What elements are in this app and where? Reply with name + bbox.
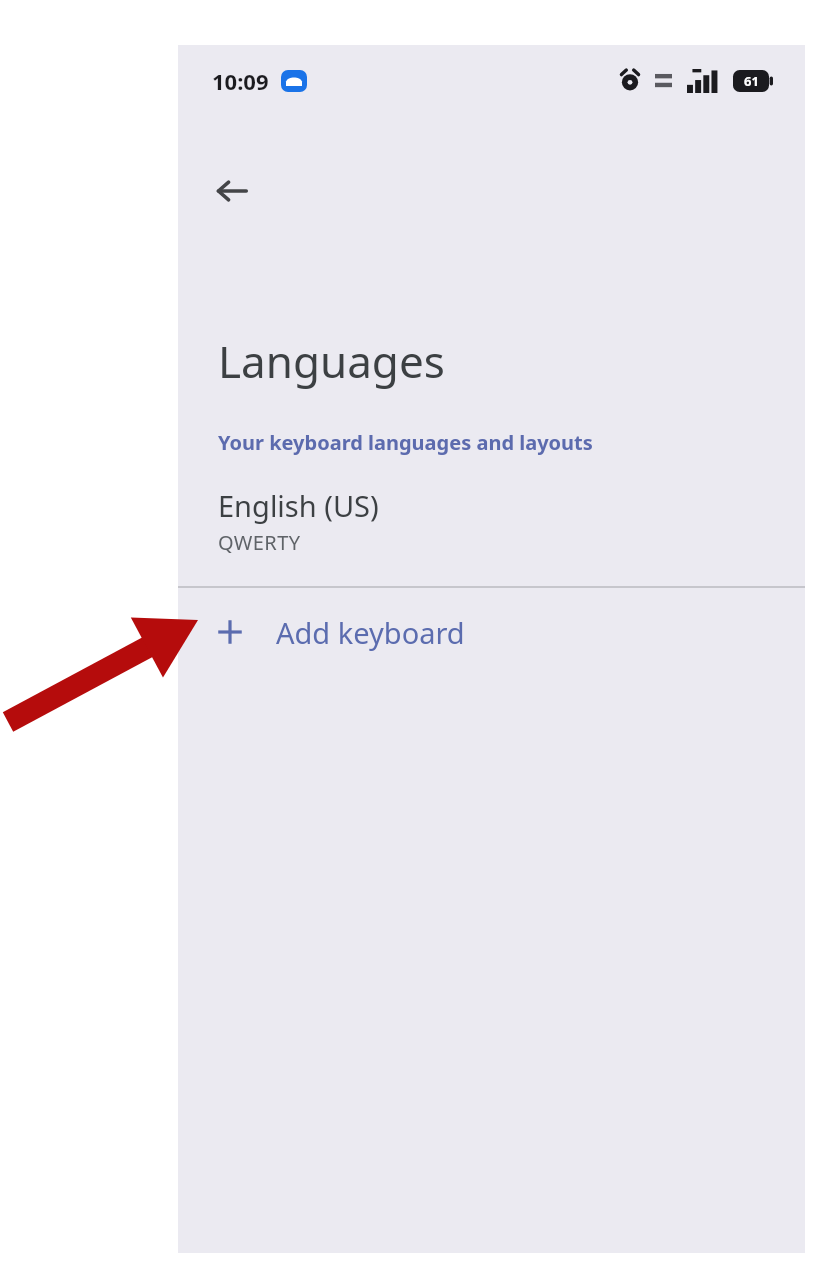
staticText: 10:09: [212, 66, 269, 96]
staticText: Your keyboard languages and layouts: [218, 429, 593, 456]
button[interactable]: Add keyboard: [178, 588, 805, 676]
button[interactable]: English (US): [178, 482, 805, 570]
staticText: Add keyboard: [276, 613, 465, 652]
staticText: Languages: [218, 331, 445, 391]
button[interactable]: Back: [200, 159, 264, 223]
staticText: English (US): [218, 486, 379, 525]
staticText: 61: [744, 72, 759, 90]
staticText: QWERTY: [218, 529, 301, 556]
